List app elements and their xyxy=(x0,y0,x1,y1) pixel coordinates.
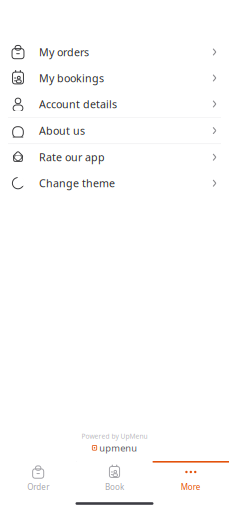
button[interactable]: Book xyxy=(76,461,153,495)
staticText: Change theme xyxy=(39,176,115,190)
button[interactable]: My bookings xyxy=(0,65,229,91)
staticText: About us xyxy=(39,123,85,138)
button[interactable]: Rate our app xyxy=(0,144,229,170)
staticText: Powered by UpMenu xyxy=(81,432,147,441)
staticText: My orders xyxy=(39,45,89,59)
button[interactable]: Order xyxy=(0,461,76,495)
staticText: Account details xyxy=(39,97,117,111)
button[interactable]: More xyxy=(153,461,229,495)
button[interactable]: Change theme xyxy=(0,170,229,196)
staticText: Book xyxy=(105,481,124,492)
staticText: More xyxy=(181,481,201,492)
button[interactable]: Account details xyxy=(0,91,229,117)
staticText: upmenu xyxy=(99,442,137,454)
button[interactable]: About us xyxy=(0,118,229,144)
button[interactable]: My orders xyxy=(0,39,229,65)
staticText: Rate our app xyxy=(39,150,105,164)
staticText: Order xyxy=(27,481,49,492)
staticText: My bookings xyxy=(39,71,104,85)
